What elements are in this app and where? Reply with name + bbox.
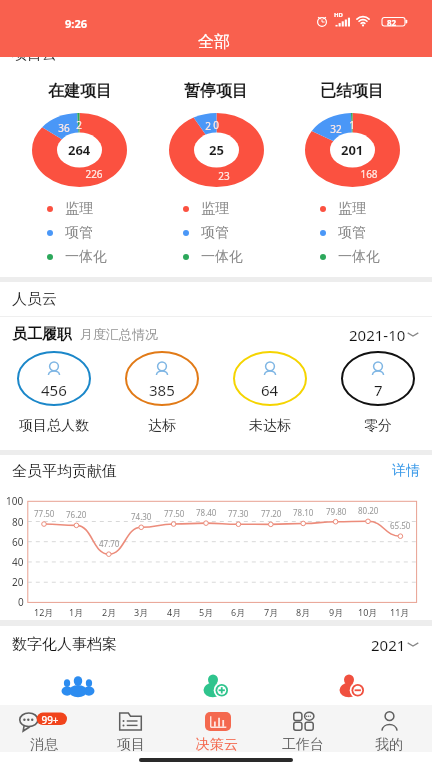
staticText: 一体化 [201, 248, 243, 266]
button[interactable]: 2021-10 [349, 325, 420, 343]
staticText: 6月 [231, 606, 246, 618]
button[interactable]: 项管 [320, 223, 366, 243]
button[interactable]: 工作台 [260, 705, 346, 752]
staticText: 1月 [69, 606, 84, 618]
staticText: 5月 [199, 606, 214, 618]
staticText: 月度汇总情况 [80, 326, 158, 342]
button[interactable]: 详情 [392, 462, 420, 480]
staticText: 2 [205, 119, 211, 133]
staticText: 8月 [296, 606, 311, 618]
button[interactable]: 99+ [0, 705, 87, 752]
staticText: 20 [12, 575, 24, 589]
staticText: 906 [65, 699, 91, 719]
staticText: 9:26 [65, 16, 87, 31]
staticText: 64 [261, 380, 279, 400]
staticText: 11月 [390, 606, 410, 618]
staticText: HD [334, 11, 343, 19]
staticText: 全部 [198, 32, 230, 52]
staticText: 264 [68, 141, 91, 159]
staticText: 未达标 [249, 417, 291, 435]
staticText: 78.10 [293, 507, 314, 518]
button[interactable]: 项目总人数 [17, 351, 91, 406]
staticText: 2021-10 [349, 325, 406, 343]
staticText: 9月 [329, 606, 344, 618]
staticText: 76.20 [66, 509, 87, 520]
staticText: 77.30 [228, 508, 249, 519]
staticText: 项管 [65, 224, 93, 242]
button[interactable]: 项管 [47, 223, 93, 243]
button[interactable]: 监理 [183, 199, 229, 219]
staticText: 7月 [264, 606, 279, 618]
staticText: 32 [330, 122, 342, 136]
staticText: 我的 [375, 736, 403, 752]
staticText: 74.30 [131, 511, 152, 522]
staticText: 7 [374, 380, 383, 400]
staticText: 一体化 [338, 248, 380, 266]
button[interactable]: 一体化 [183, 247, 243, 267]
button[interactable]: 入职 [203, 674, 228, 696]
staticText: 项目 [117, 736, 145, 752]
staticText: 385 [149, 380, 175, 400]
button[interactable]: 零分 [341, 351, 415, 406]
button[interactable]: 项目 [87, 705, 174, 752]
staticText: 60 [12, 535, 24, 549]
staticText: 223 [203, 699, 229, 719]
staticText: 201 [341, 141, 364, 159]
button[interactable]: 25 [169, 113, 264, 187]
staticText: 4月 [167, 606, 182, 618]
staticText: 99+ [39, 713, 61, 727]
button[interactable]: 一体化 [47, 247, 107, 267]
staticText: 决策云 [196, 736, 238, 752]
staticText: 36 [58, 121, 70, 135]
button[interactable]: 离职 [339, 674, 364, 696]
staticText: 工作台 [282, 736, 324, 752]
staticText: 80.20 [358, 505, 379, 516]
button[interactable]: 达标 [125, 351, 199, 406]
staticText: 一体化 [65, 248, 107, 266]
button[interactable]: 未达标 [233, 351, 307, 406]
staticText: 全员平均贡献值 [12, 462, 117, 480]
staticText: 77.50 [164, 508, 185, 519]
staticText: 80 [12, 515, 24, 529]
staticText: 47.70 [99, 538, 120, 549]
staticText: 78.40 [196, 507, 217, 518]
button[interactable]: 项管 [183, 223, 229, 243]
staticText: 达标 [148, 417, 176, 435]
staticText: 226 [85, 167, 103, 181]
staticText: 25 [209, 141, 224, 159]
staticText: 12月 [34, 606, 54, 618]
staticText: 暂停项目 [184, 81, 248, 101]
button[interactable]: 2021 [371, 635, 420, 653]
button[interactable]: 监理 [320, 199, 366, 219]
staticText: 已结项目 [320, 81, 384, 101]
staticText: 数字化人事档案 [12, 635, 117, 653]
staticText: 监理 [65, 200, 93, 218]
button[interactable]: 监理 [47, 199, 93, 219]
staticText: 65.50 [390, 520, 411, 531]
staticText: 3月 [134, 606, 149, 618]
button[interactable]: 一体化 [320, 247, 380, 267]
staticText: 2 [76, 118, 82, 132]
staticText: 10月 [358, 606, 378, 618]
staticText: 项目总人数 [19, 417, 89, 435]
staticText: 项目云 [12, 45, 57, 64]
button[interactable]: 员工总数 [61, 675, 95, 698]
staticText: 456 [41, 380, 67, 400]
staticText: 40 [12, 555, 24, 569]
staticText: 0 [213, 118, 219, 132]
staticText: 23 [218, 169, 230, 183]
button[interactable]: 决策云 [174, 705, 260, 752]
button[interactable]: 264 [32, 113, 127, 187]
staticText: 2月 [102, 606, 117, 618]
staticText: 零分 [364, 417, 392, 435]
staticText: 人员云 [12, 290, 57, 309]
button[interactable]: 201 [305, 113, 400, 187]
staticText: 77.20 [261, 508, 282, 519]
staticText: 79.80 [326, 506, 347, 517]
staticText: 监理 [338, 200, 366, 218]
staticText: 100 [6, 494, 24, 508]
staticText: 0 [18, 595, 24, 609]
staticText: 2021 [371, 635, 406, 653]
staticText: 77.50 [34, 508, 55, 519]
button[interactable]: 我的 [346, 705, 432, 752]
